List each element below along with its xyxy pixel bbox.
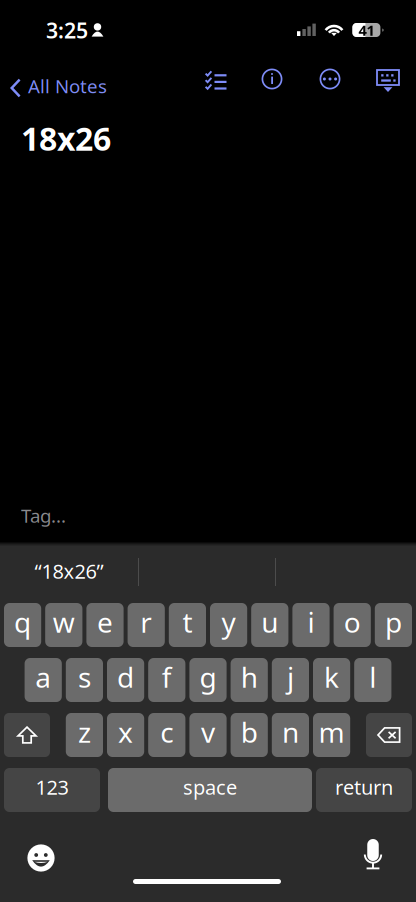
- staticText: s: [78, 658, 91, 696]
- button[interactable]: v: [189, 713, 227, 757]
- button[interactable]: w: [45, 603, 82, 647]
- button[interactable]: k: [313, 658, 350, 702]
- staticText: All Notes: [28, 74, 107, 98]
- button[interactable]: s: [66, 658, 103, 702]
- button[interactable]: space: [108, 768, 312, 812]
- button[interactable]: p: [375, 603, 412, 647]
- button[interactable]: Info: [257, 62, 287, 96]
- button[interactable]: return: [316, 768, 412, 812]
- button[interactable]: g: [189, 658, 227, 702]
- staticText: n: [282, 713, 299, 751]
- button[interactable]: i: [292, 603, 330, 647]
- button[interactable]: Checklist: [201, 62, 231, 96]
- button[interactable]: c: [148, 713, 185, 757]
- button[interactable]: f: [148, 658, 185, 702]
- button[interactable]: r: [128, 603, 165, 647]
- button[interactable]: 123: [4, 768, 100, 812]
- button[interactable]: m: [313, 713, 350, 757]
- staticText: g: [199, 658, 216, 696]
- button[interactable]: Delete: [366, 713, 412, 757]
- button[interactable]: j: [272, 658, 309, 702]
- staticText: c: [160, 713, 173, 751]
- button[interactable]: t: [169, 603, 206, 647]
- staticText: t: [182, 603, 192, 641]
- staticText: e: [97, 603, 113, 641]
- button[interactable]: q: [4, 603, 41, 647]
- button[interactable]: n: [272, 713, 309, 757]
- staticText: space: [183, 774, 237, 800]
- staticText: return: [335, 774, 393, 800]
- button[interactable]: Shift: [4, 713, 50, 757]
- staticText: i: [307, 603, 314, 641]
- staticText: r: [140, 603, 152, 641]
- button[interactable]: “18x26”: [0, 554, 138, 588]
- staticText: d: [117, 658, 134, 696]
- staticText: Tag...: [21, 503, 66, 528]
- staticText: y: [222, 603, 236, 641]
- staticText: 123: [35, 774, 68, 800]
- staticText: 41: [358, 20, 374, 40]
- staticText: q: [14, 603, 31, 641]
- staticText: o: [344, 603, 361, 641]
- staticText: h: [241, 658, 258, 696]
- staticText: “18x26”: [34, 558, 103, 584]
- staticText: m: [319, 713, 345, 751]
- staticText: b: [241, 713, 258, 751]
- button[interactable]: z: [66, 713, 103, 757]
- button[interactable]: x: [107, 713, 144, 757]
- button[interactable]: Dictation: [354, 836, 392, 874]
- staticText: a: [35, 658, 51, 696]
- button[interactable]: e: [86, 603, 124, 647]
- button[interactable]: Hide Keyboard: [373, 64, 403, 98]
- staticText: 18x26: [21, 117, 111, 159]
- staticText: v: [201, 713, 215, 751]
- staticText: w: [53, 603, 75, 641]
- button[interactable]: u: [251, 603, 288, 647]
- button[interactable]: o: [334, 603, 371, 647]
- staticText: x: [118, 713, 133, 751]
- staticText: l: [369, 658, 376, 696]
- button[interactable]: h: [231, 658, 268, 702]
- staticText: u: [261, 603, 278, 641]
- staticText: p: [385, 603, 402, 641]
- button[interactable]: d: [107, 658, 144, 702]
- button[interactable]: l: [354, 658, 391, 702]
- button[interactable]: Emoji: [22, 839, 60, 877]
- button[interactable]: y: [210, 603, 247, 647]
- staticText: j: [287, 658, 294, 696]
- button[interactable]: b: [231, 713, 268, 757]
- staticText: f: [162, 658, 172, 696]
- staticText: z: [78, 713, 91, 751]
- button[interactable]: All Notes: [10, 71, 107, 105]
- staticText: 3:25: [46, 16, 88, 44]
- button[interactable]: More: [315, 62, 345, 96]
- button[interactable]: a: [25, 658, 62, 702]
- staticText: k: [324, 658, 339, 696]
